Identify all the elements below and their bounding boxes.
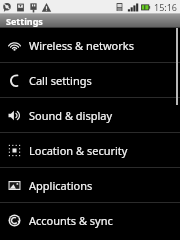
button[interactable]: Location & security bbox=[0, 133, 180, 167]
staticText: Wireless & networks bbox=[29, 38, 134, 53]
button[interactable]: Accounts & sync bbox=[0, 203, 180, 237]
staticText: Sound & display bbox=[29, 108, 113, 123]
button[interactable]: Call settings bbox=[0, 63, 180, 97]
button[interactable]: Applications bbox=[0, 168, 180, 202]
staticText: Applications bbox=[29, 178, 93, 193]
button[interactable]: Sound & display bbox=[0, 98, 180, 132]
button[interactable]: Wireless & networks bbox=[0, 28, 180, 62]
staticText: Call settings bbox=[29, 73, 92, 88]
staticText: Location & security bbox=[29, 143, 128, 158]
staticText: Accounts & sync bbox=[29, 213, 113, 228]
staticText: Settings bbox=[6, 15, 43, 27]
staticText: 15:16 bbox=[154, 1, 178, 13]
